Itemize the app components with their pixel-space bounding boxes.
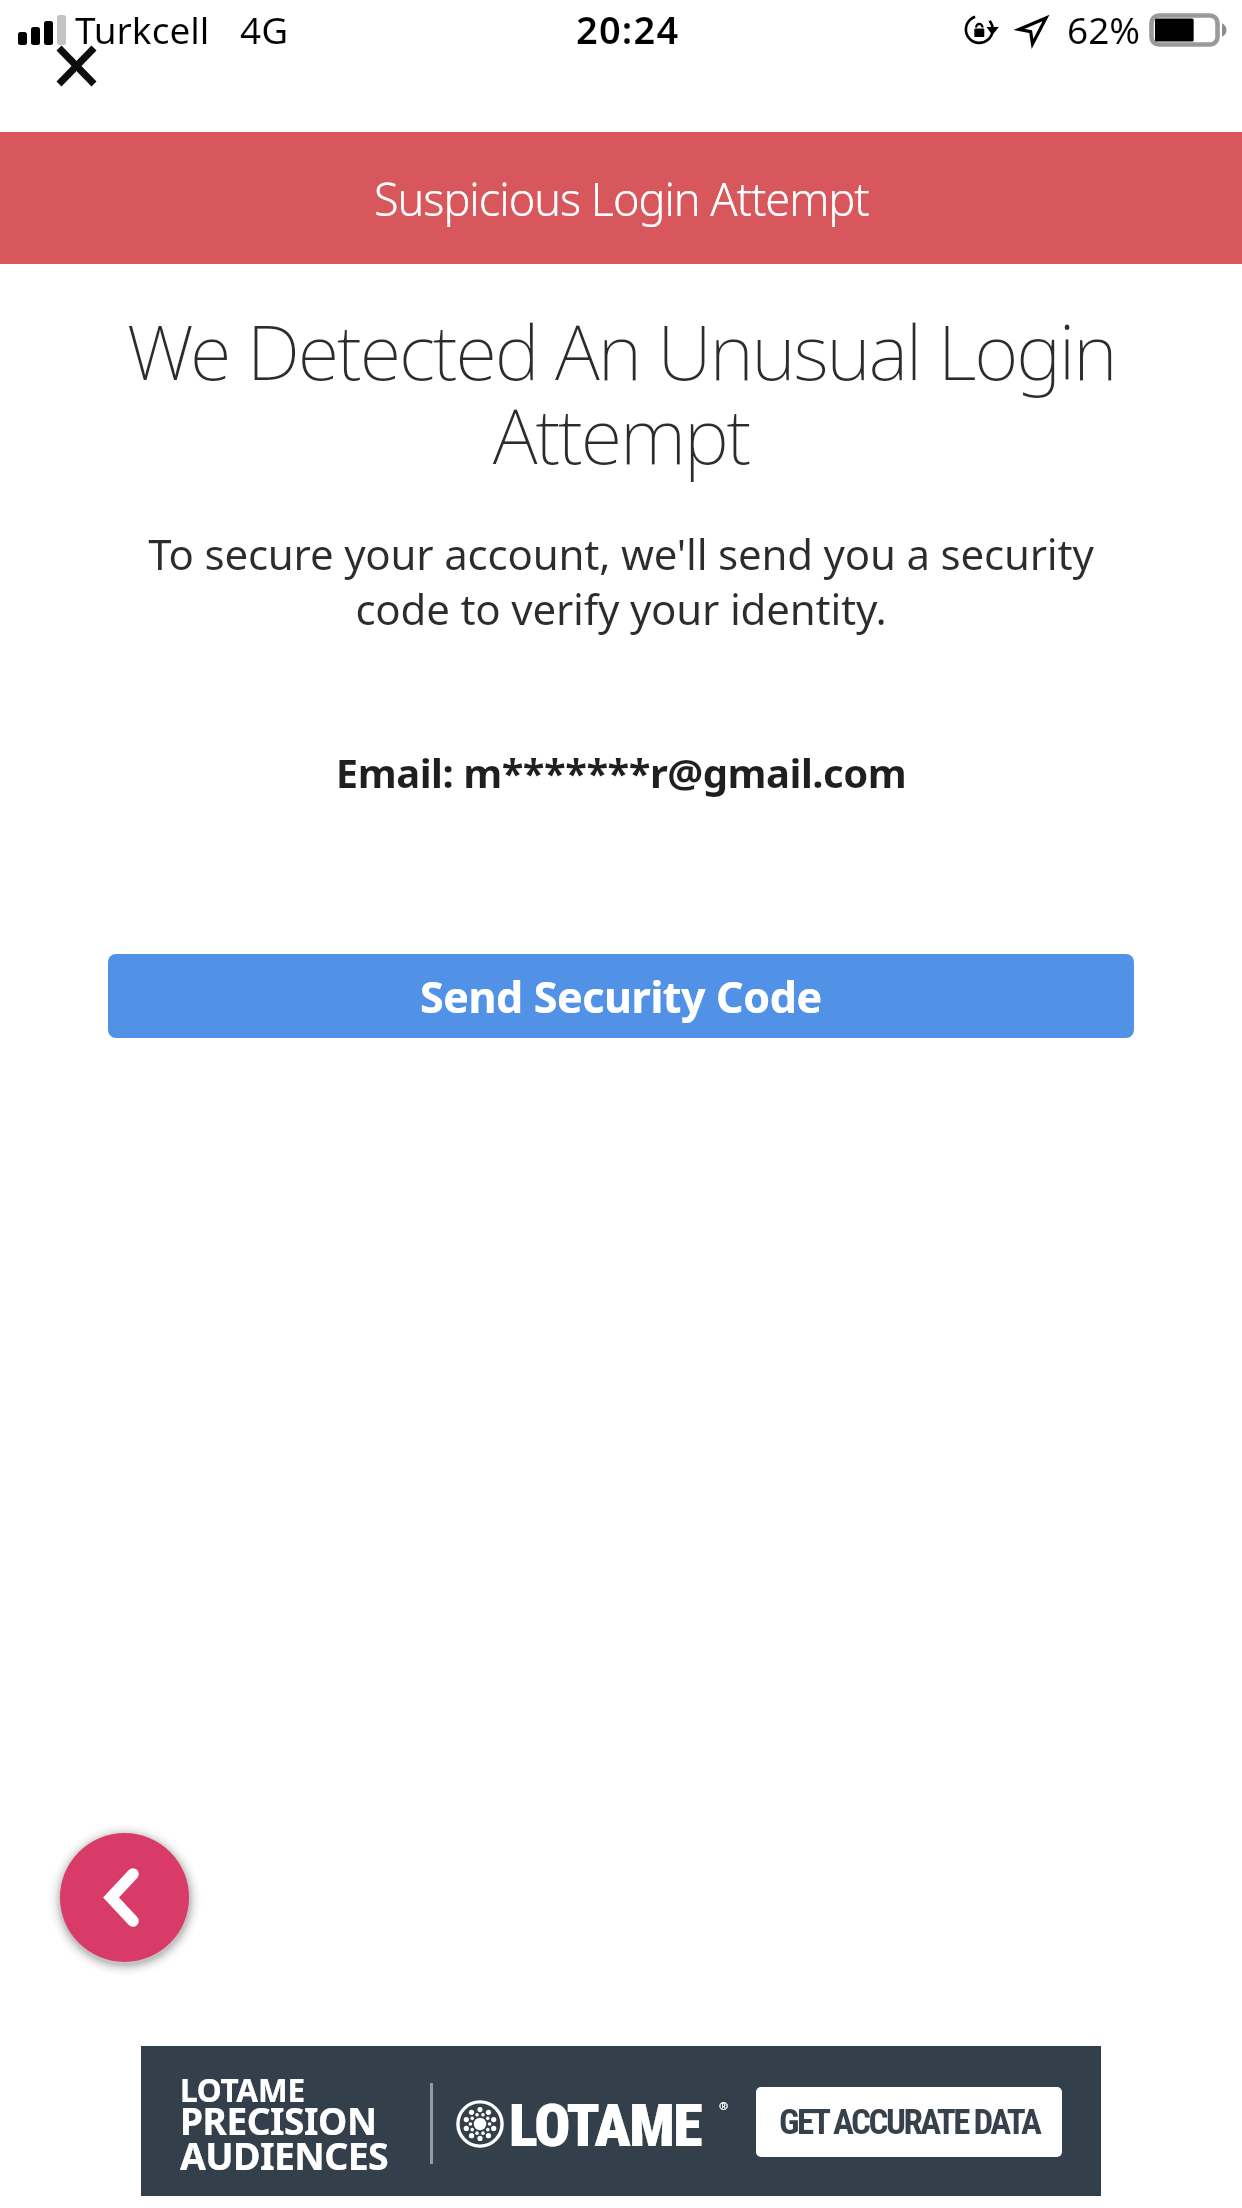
button[interactable]: LOTAME bbox=[141, 2046, 1101, 2196]
staticText: Turkcell bbox=[75, 4, 210, 54]
staticText: 4G bbox=[240, 4, 289, 54]
staticText: LOTAME bbox=[509, 2090, 701, 2160]
staticText: Email: m*******r@gmail.com bbox=[0, 745, 1242, 799]
staticText: To secure your account, we'll send you a… bbox=[140, 525, 1102, 637]
button[interactable]: GET ACCURATE DATA bbox=[756, 2087, 1062, 2157]
button[interactable]: Back bbox=[60, 1833, 189, 1962]
staticText: PRECISION bbox=[180, 2095, 377, 2145]
staticText: 20:24 bbox=[576, 3, 680, 55]
staticText: AUDIENCES bbox=[180, 2130, 389, 2181]
button[interactable]: Send Security Code bbox=[108, 954, 1134, 1038]
button[interactable]: Suspicious Login Attempt bbox=[0, 132, 1242, 264]
staticText: ® bbox=[719, 2098, 729, 2113]
staticText: Send Security Code bbox=[420, 967, 822, 1026]
staticText: LOTAME bbox=[180, 2068, 305, 2111]
button[interactable]: Close bbox=[36, 25, 118, 107]
staticText: GET ACCURATE DATA bbox=[779, 2102, 1040, 2143]
staticText: 62% bbox=[1067, 4, 1141, 54]
staticText: We Detected An Unusual Login Attempt bbox=[118, 299, 1124, 486]
staticText: Suspicious Login Attempt bbox=[374, 168, 869, 229]
